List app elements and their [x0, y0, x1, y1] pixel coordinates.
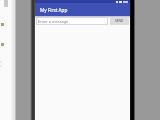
staticText: SEND — [115, 19, 124, 23]
staticText: Enter a message — [38, 19, 69, 24]
button[interactable]: Enter a message — [36, 17, 108, 25]
button[interactable]: SEND — [110, 17, 129, 25]
staticText: My First App — [40, 7, 68, 13]
